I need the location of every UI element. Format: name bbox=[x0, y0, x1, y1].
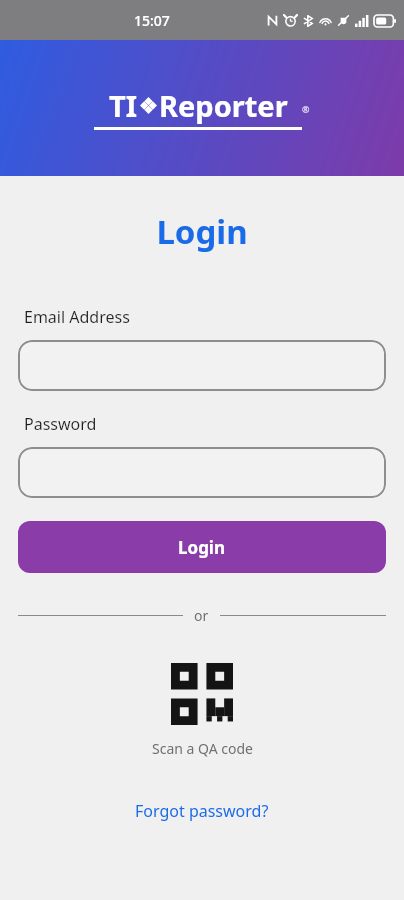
staticText: Password bbox=[24, 413, 97, 435]
staticText: Login bbox=[178, 536, 226, 559]
button[interactable]: Forgot password? bbox=[0, 800, 404, 822]
staticText: Login bbox=[0, 209, 404, 254]
button[interactable]: Scan a QA code bbox=[0, 663, 404, 758]
button[interactable] bbox=[18, 340, 386, 391]
staticText: Email Address bbox=[24, 306, 130, 328]
button[interactable] bbox=[18, 447, 386, 498]
staticText: ® bbox=[302, 103, 310, 115]
staticText: Scan a QA code bbox=[152, 739, 253, 758]
staticText: Forgot password? bbox=[135, 800, 269, 822]
button[interactable]: Login bbox=[18, 521, 386, 573]
other: Scan a QA code bbox=[171, 663, 233, 725]
staticText: Reporter bbox=[159, 86, 288, 125]
staticText: or bbox=[194, 606, 209, 625]
staticText: TI bbox=[109, 86, 138, 125]
staticText: 15:07 bbox=[134, 11, 170, 30]
